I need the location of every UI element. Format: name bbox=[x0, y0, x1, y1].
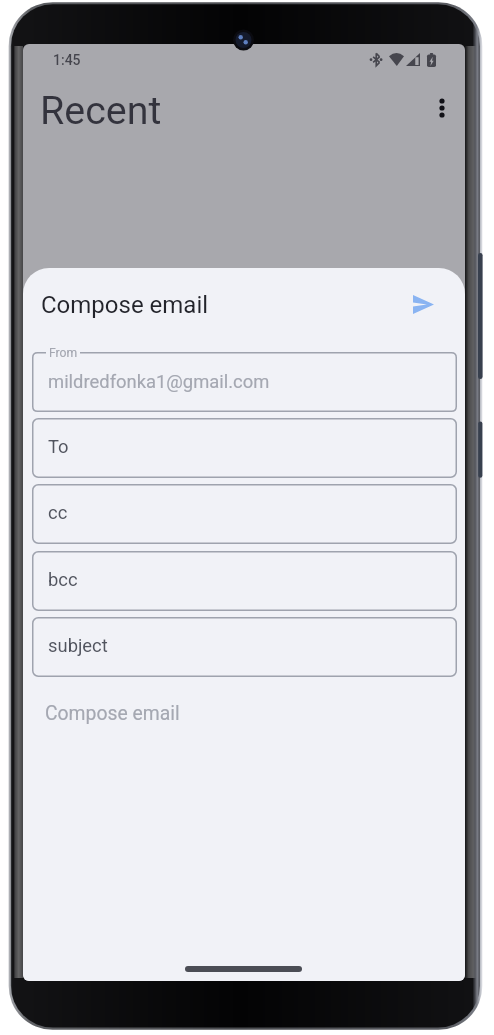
staticText: mildredfonka1@gmail.com bbox=[48, 371, 270, 393]
staticText: To bbox=[48, 436, 69, 458]
staticText: From bbox=[49, 346, 78, 360]
button[interactable]: Send bbox=[402, 283, 444, 325]
staticText: bcc bbox=[48, 569, 78, 591]
button[interactable]: cc bbox=[32, 484, 457, 544]
staticText: Compose email bbox=[45, 702, 180, 725]
staticText: Recent bbox=[40, 87, 162, 133]
button[interactable]: From bbox=[32, 352, 457, 412]
staticText: Compose email bbox=[41, 291, 209, 319]
button[interactable]: More options bbox=[422, 88, 462, 128]
button[interactable]: subject bbox=[32, 617, 457, 677]
staticText: 1:45 bbox=[53, 52, 81, 68]
staticText: subject bbox=[48, 635, 108, 657]
button[interactable]: To bbox=[32, 418, 457, 478]
staticText: cc bbox=[48, 502, 68, 524]
button[interactable]: bcc bbox=[32, 551, 457, 611]
